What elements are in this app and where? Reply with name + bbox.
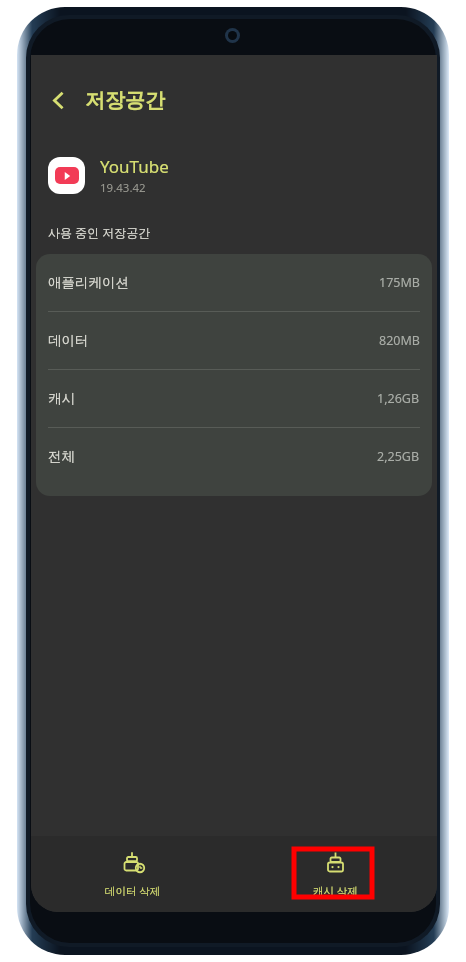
button[interactable]: 데이터 xyxy=(36,312,432,369)
button[interactable]: 애플리케이션 xyxy=(36,254,432,311)
staticText: 데이터 삭제 xyxy=(105,884,161,898)
button[interactable]: 캐시 삭제 xyxy=(234,836,437,912)
staticText: 19.43.42 xyxy=(100,180,146,196)
button[interactable]: 전체 xyxy=(36,428,432,485)
staticText: 175MB xyxy=(379,274,420,291)
staticText: 2,25GB xyxy=(377,448,420,465)
staticText: 820MB xyxy=(379,332,420,349)
staticText: 전체 xyxy=(48,448,75,465)
button[interactable]: Back xyxy=(38,80,78,120)
button[interactable]: 캐시 xyxy=(36,370,432,427)
staticText: 캐시 xyxy=(48,390,75,407)
staticText: 데이터 xyxy=(48,332,89,349)
staticText: YouTube xyxy=(100,155,169,178)
staticText: 저장공간 xyxy=(85,88,165,113)
button[interactable]: 데이터 삭제 xyxy=(31,836,234,912)
staticText: 1,26GB xyxy=(377,390,420,407)
staticText: 캐시 삭제 xyxy=(313,884,358,898)
staticText: 애플리케이션 xyxy=(48,274,129,291)
staticText: 사용 중인 저장공간 xyxy=(48,224,151,240)
